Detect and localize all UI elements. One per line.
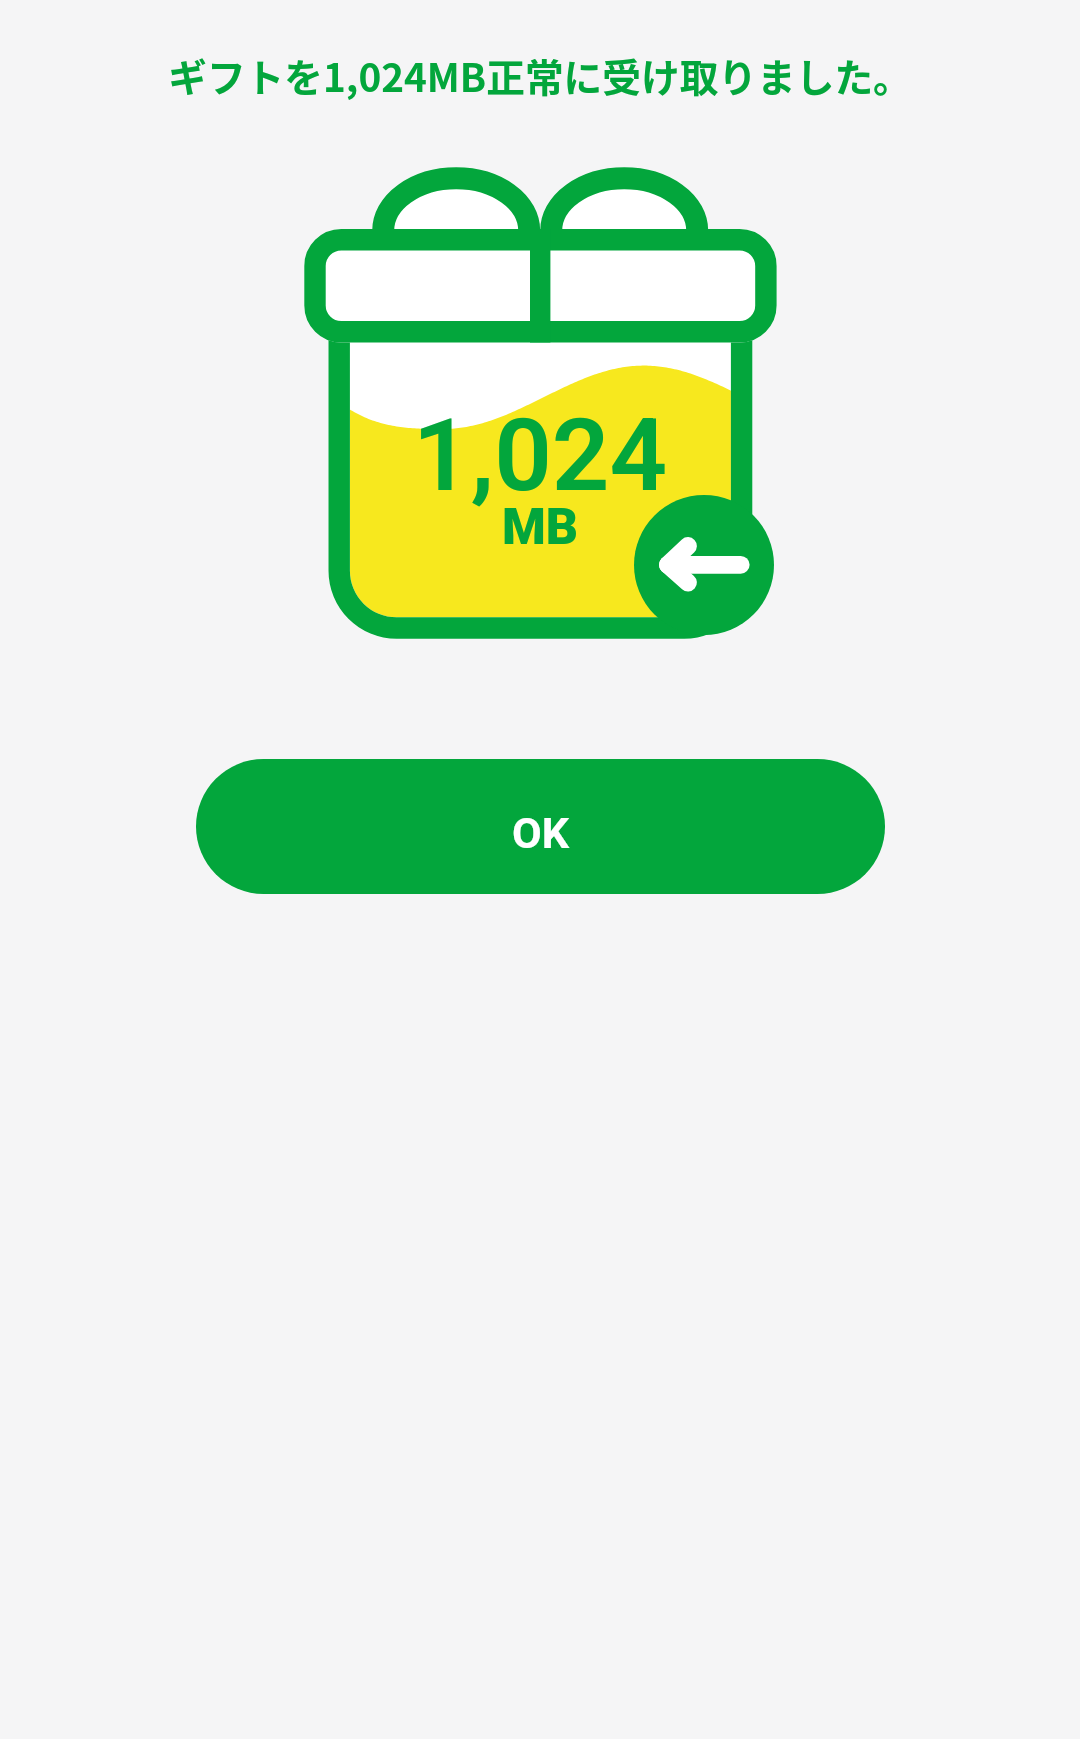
staticText: 1,024 xyxy=(0,396,1080,1739)
staticText: MB xyxy=(0,498,1080,1739)
button[interactable]: OK xyxy=(196,759,885,894)
button[interactable]: Receive gift xyxy=(634,495,774,635)
staticText: OK xyxy=(512,808,569,858)
staticText: ギフトを1,024MB正常に受け取りました。 xyxy=(0,47,1080,1739)
